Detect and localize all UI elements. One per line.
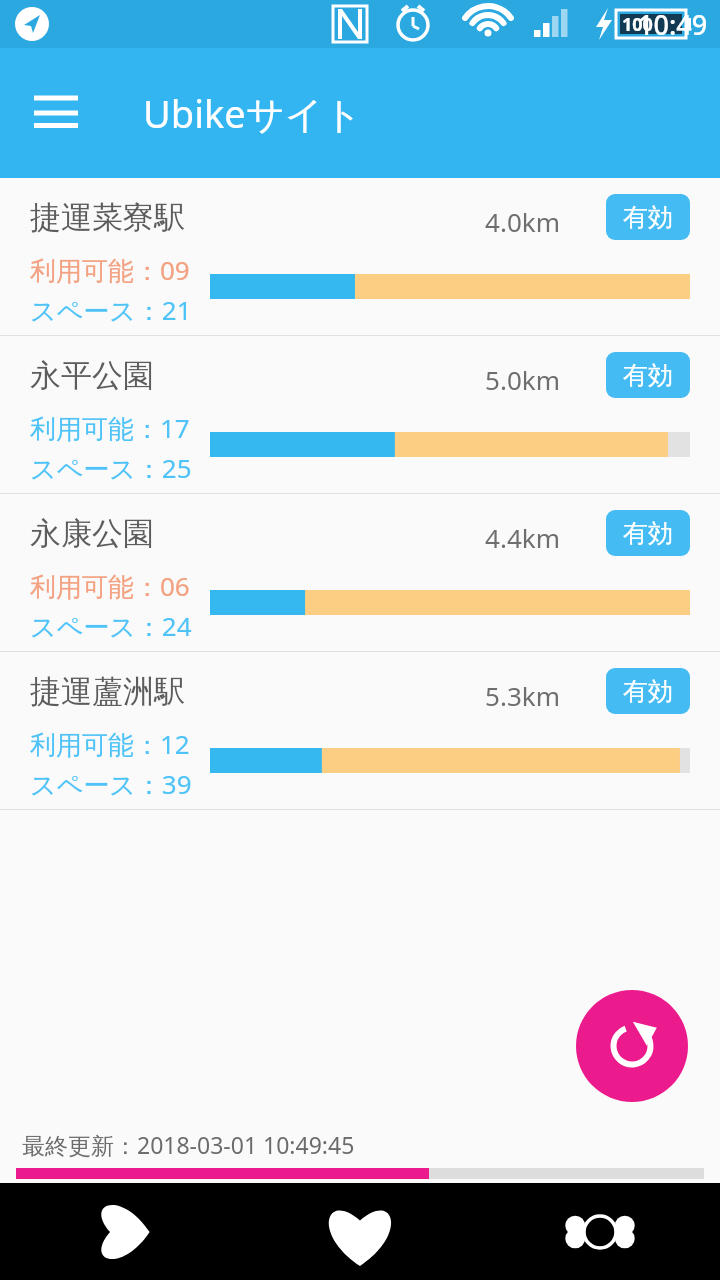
staticText: 永康公園 [30, 514, 154, 553]
staticText: 最終更新：2018-03-01 10:49:45 [22, 1129, 355, 1160]
staticText: 5.0km [400, 362, 560, 397]
staticText: 利用可能：09 [30, 252, 190, 288]
button[interactable]: Refresh [576, 990, 688, 1102]
staticText: 10:49 [638, 6, 708, 43]
button[interactable]: 永平公園 [0, 336, 720, 493]
staticText: スペース：24 [30, 608, 192, 644]
staticText: 捷運蘆洲駅 [30, 672, 185, 711]
staticText: 利用可能：12 [30, 726, 190, 762]
button[interactable]: 捷運菜寮駅 [0, 178, 720, 335]
staticText: 4.0km [400, 204, 560, 239]
button[interactable]: Home [305, 1183, 415, 1280]
staticText: 永平公園 [30, 356, 154, 395]
staticText: 利用可能：06 [30, 568, 190, 604]
staticText: 有効 [623, 202, 673, 233]
staticText: スペース：25 [30, 450, 192, 486]
staticText: 有効 [623, 676, 673, 707]
staticText: スペース：39 [30, 766, 192, 802]
button[interactable]: Menu [18, 75, 94, 151]
button[interactable]: 捷運蘆洲駅 [0, 652, 720, 809]
staticText: 4.4km [400, 520, 560, 555]
button[interactable]: Back [65, 1183, 175, 1280]
staticText: スペース：21 [30, 292, 192, 328]
button[interactable]: Recents [545, 1183, 655, 1280]
button[interactable]: 有効 [606, 668, 690, 714]
staticText: 100 [622, 12, 653, 37]
button[interactable]: 永康公園 [0, 494, 720, 651]
staticText: 5.3km [400, 678, 560, 713]
button[interactable]: 有効 [606, 352, 690, 398]
staticText: 有効 [623, 518, 673, 549]
button[interactable]: 有効 [606, 194, 690, 240]
staticText: 有効 [623, 360, 673, 391]
staticText: Ubikeサイト [143, 87, 363, 139]
staticText: 利用可能：17 [30, 410, 190, 446]
button[interactable]: 有効 [606, 510, 690, 556]
staticText: 捷運菜寮駅 [30, 198, 185, 237]
